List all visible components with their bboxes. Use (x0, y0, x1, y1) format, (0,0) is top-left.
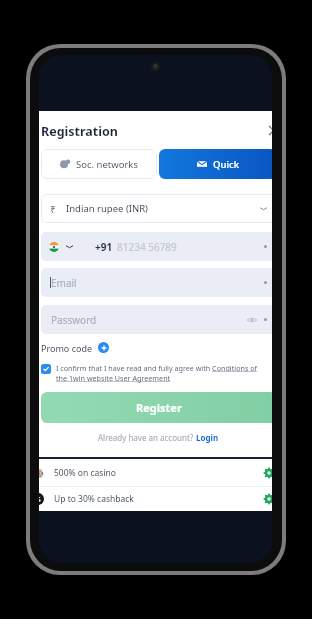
button[interactable]: Password (41, 305, 272, 334)
button[interactable]: Up to 30% cashback (39, 487, 272, 511)
button[interactable]: Agree to terms (41, 364, 51, 374)
staticText: +91 (95, 240, 113, 254)
button[interactable]: Quick (159, 149, 272, 179)
button[interactable]: Promo code (41, 340, 272, 355)
staticText: Registration (41, 123, 118, 140)
staticText: 81234 56789 (117, 240, 177, 254)
staticText: I confirm that I have read and fully agr… (56, 363, 258, 373)
staticText: Up to 30% cashback (54, 493, 134, 505)
button[interactable]: 500% on casino (39, 459, 272, 486)
staticText: Promo code (41, 342, 93, 354)
staticText: 500% on casino (54, 467, 116, 479)
button[interactable]: Soc. networks (41, 149, 157, 179)
button[interactable]: Already have an account? (39, 432, 272, 443)
button[interactable]: ₹ (41, 194, 272, 223)
staticText: Indian rupee (INR) (66, 202, 148, 215)
staticText: ₹ (50, 202, 56, 216)
button[interactable]: +91 (41, 232, 272, 261)
staticText: Quick (213, 158, 239, 171)
staticText: Email (51, 276, 77, 290)
staticText: Soc. networks (76, 158, 138, 171)
staticText: the 1win website User Agreement (56, 373, 171, 383)
staticText: Register (136, 400, 182, 415)
button[interactable]: Close (261, 118, 272, 142)
button[interactable]: Register (41, 392, 272, 423)
staticText: Already have an account? (98, 432, 196, 443)
staticText: Password (51, 313, 97, 327)
staticText: Login (196, 432, 219, 443)
button[interactable]: Email (41, 268, 272, 297)
